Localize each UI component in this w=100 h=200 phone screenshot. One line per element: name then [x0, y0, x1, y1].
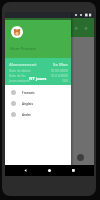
staticText: Date de debut [9, 69, 31, 73]
staticText: Arabe [22, 113, 31, 117]
staticText: 5x Max [53, 62, 68, 68]
staticText: Abonnement [9, 62, 37, 68]
staticText: 01/01/2020 [51, 69, 68, 73]
staticText: NT jours [29, 76, 47, 82]
button[interactable]: Recent apps [69, 166, 78, 175]
staticText: Anglais [22, 102, 34, 106]
staticText: Francais [22, 91, 35, 95]
staticText: 120 [62, 79, 68, 83]
button[interactable]: Anglais [5, 98, 71, 109]
button[interactable]: Francais [5, 87, 71, 98]
button[interactable]: Arabe [5, 109, 71, 120]
button[interactable]: Back [21, 166, 30, 175]
button[interactable]: Abonnement [5, 58, 71, 85]
button[interactable]: Add [77, 154, 84, 161]
staticText: 31/12/2020 [51, 74, 68, 78]
staticText: Date de fin [9, 74, 26, 78]
staticText: Jours restants [9, 79, 30, 83]
staticText: Nom Prenom [10, 46, 37, 51]
button[interactable]: Home [45, 166, 54, 175]
